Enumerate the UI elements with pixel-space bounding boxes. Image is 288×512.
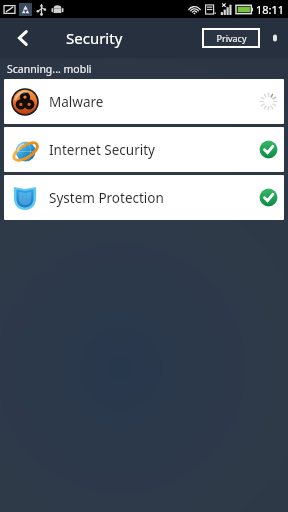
button[interactable]: System Protection (4, 175, 284, 220)
staticText: 18:11 (256, 2, 285, 17)
button[interactable]: Back (0, 18, 46, 58)
staticText: Scanning... mobli (7, 62, 92, 76)
staticText: Security (66, 28, 123, 48)
staticText: Malware (49, 93, 104, 111)
button[interactable]: Internet Security (4, 127, 284, 172)
staticText: Privacy (216, 32, 247, 44)
staticText: Internet Security (49, 141, 155, 159)
button[interactable]: More options (262, 18, 288, 58)
staticText: System Protection (49, 189, 164, 207)
button[interactable]: Privacy (204, 30, 258, 46)
button[interactable]: Malware (4, 79, 284, 124)
